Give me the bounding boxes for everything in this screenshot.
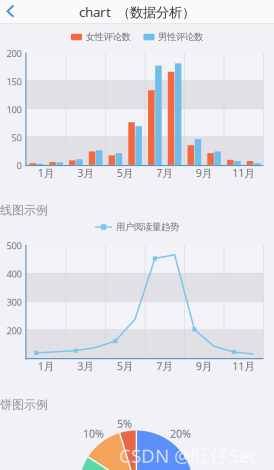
staticText: 5月 bbox=[117, 166, 134, 180]
staticText: 11月 bbox=[232, 166, 255, 180]
staticText: 11月 bbox=[232, 359, 255, 373]
staticText: 200 bbox=[6, 47, 21, 60]
staticText: 1月 bbox=[38, 359, 55, 373]
staticText: 用户阅读量趋势 bbox=[116, 221, 179, 233]
staticText: 3月 bbox=[77, 359, 94, 373]
staticText: 1月 bbox=[38, 166, 55, 180]
staticText: 5% bbox=[117, 416, 132, 431]
staticText: 5月 bbox=[117, 359, 134, 373]
staticText: 3月 bbox=[77, 166, 94, 180]
staticText: 9月 bbox=[196, 166, 213, 180]
staticText: 100 bbox=[6, 103, 21, 116]
staticText: 女性评论数 bbox=[85, 31, 130, 43]
staticText: 饼图示例 bbox=[0, 397, 48, 412]
staticText: 7月 bbox=[156, 166, 173, 180]
staticText: CSDN @旺仔Sec bbox=[119, 443, 259, 468]
staticText: chart （数据分析） bbox=[79, 3, 195, 21]
staticText: 50 bbox=[11, 131, 21, 144]
staticText: 300 bbox=[6, 296, 21, 308]
staticText: 500 bbox=[6, 239, 21, 252]
staticText: 线图示例 bbox=[0, 203, 48, 218]
button[interactable]: Back bbox=[0, 0, 26, 23]
staticText: 200 bbox=[6, 324, 21, 337]
staticText: 7月 bbox=[156, 359, 173, 373]
staticText: 9月 bbox=[196, 359, 213, 373]
staticText: 10% bbox=[83, 426, 104, 441]
staticText: 150 bbox=[6, 75, 21, 88]
staticText: 20% bbox=[170, 426, 191, 441]
staticText: 0 bbox=[16, 159, 21, 172]
staticText: 男性评论数 bbox=[158, 31, 203, 43]
staticText: 400 bbox=[6, 268, 21, 280]
